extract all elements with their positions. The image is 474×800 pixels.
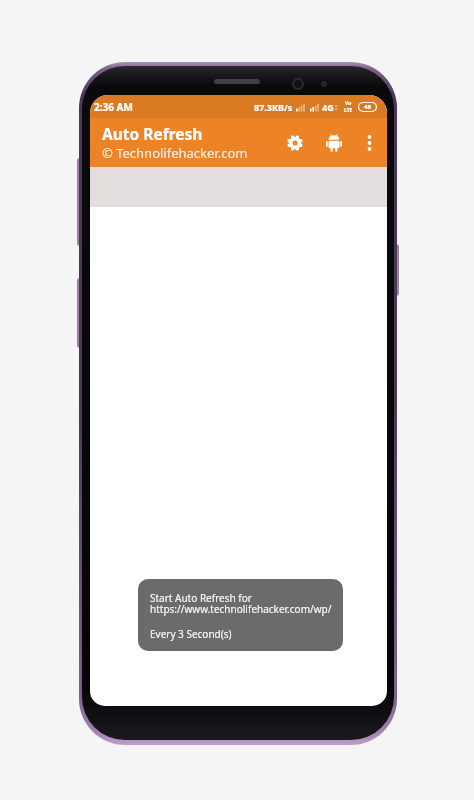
staticText: Vo: [345, 100, 352, 107]
staticText: 87.3KB/s: [254, 101, 293, 113]
staticText: Start Auto Refresh for: [150, 591, 252, 605]
staticText: Auto Refresh: [102, 123, 203, 144]
button[interactable]: [287, 135, 303, 151]
staticText: Every 3 Second(s): [150, 627, 232, 641]
staticText: 4G: [322, 101, 334, 113]
button[interactable]: [366, 135, 373, 151]
staticText: https://www.technolifehacker.com/wp/: [150, 602, 332, 616]
button[interactable]: [326, 134, 342, 152]
staticText: 48: [364, 103, 371, 111]
staticText: LTE: [344, 107, 353, 114]
staticText: © Technolifehacker.com: [102, 144, 248, 162]
button[interactable]: Start Auto Refresh for: [138, 579, 343, 651]
staticText: 2:36 AM: [94, 100, 133, 114]
